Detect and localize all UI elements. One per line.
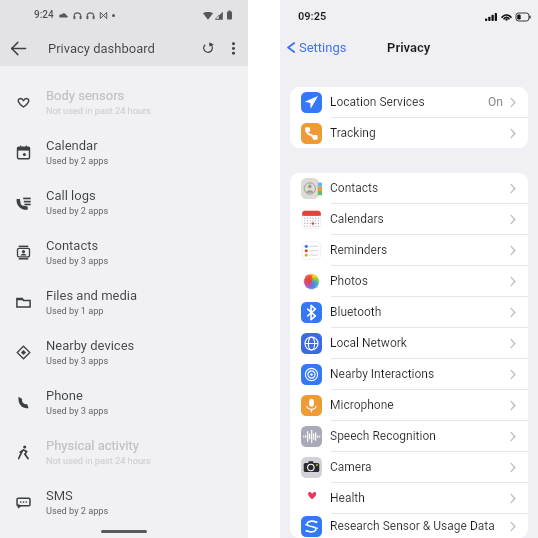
button[interactable]: Local Network <box>290 328 528 358</box>
button[interactable]: Nearby devices <box>0 327 248 377</box>
staticText: Camera <box>330 460 372 474</box>
staticText: Not used in past 24 hours <box>46 105 151 116</box>
staticText: Local Network <box>330 336 407 350</box>
button[interactable]: Photos <box>290 266 528 296</box>
button[interactable]: Refresh <box>194 34 222 62</box>
button[interactable]: Contacts <box>290 173 528 203</box>
button[interactable]: Research Sensor & Usage Data <box>290 514 528 538</box>
staticText: SMS <box>46 488 73 503</box>
button[interactable]: Settings <box>286 40 347 55</box>
staticText: Phone <box>46 388 83 403</box>
staticText: Bluetooth <box>330 305 382 319</box>
staticText: Nearby Interactions <box>330 367 435 381</box>
staticText: Calendar <box>46 138 98 153</box>
button[interactable]: Files and media <box>0 277 248 327</box>
button[interactable]: Back <box>0 30 36 66</box>
staticText: Nearby devices <box>46 338 135 353</box>
button[interactable]: Body sensors <box>0 77 248 127</box>
button[interactable]: Physical activity <box>0 427 248 477</box>
staticText: Physical activity <box>46 438 139 453</box>
staticText: Files and media <box>46 288 137 303</box>
staticText: Contacts <box>330 181 379 195</box>
staticText: Privacy dashboard <box>48 41 155 56</box>
button[interactable]: More options <box>222 37 245 60</box>
staticText: Used by 2 apps <box>46 205 109 216</box>
staticText: Used by 2 apps <box>46 155 109 166</box>
staticText: Health <box>330 491 365 505</box>
staticText: Tracking <box>330 126 376 140</box>
staticText: Privacy <box>387 40 431 55</box>
button[interactable]: Calendar <box>0 127 248 177</box>
staticText: Research Sensor & Usage Data <box>330 519 495 533</box>
button[interactable]: Health <box>290 483 528 513</box>
staticText: Used by 3 apps <box>46 405 109 416</box>
staticText: Used by 1 app <box>46 305 104 316</box>
staticText: Reminders <box>330 243 388 257</box>
staticText: Contacts <box>46 238 99 253</box>
button[interactable]: Contacts <box>0 227 248 277</box>
staticText: Used by 3 apps <box>46 255 109 266</box>
staticText: Settings <box>299 40 347 55</box>
staticText: Used by 2 apps <box>46 505 109 516</box>
staticText: Photos <box>330 274 368 288</box>
staticText: 09:25 <box>298 10 327 23</box>
staticText: Microphone <box>330 398 394 412</box>
staticText: Call logs <box>46 188 96 203</box>
staticText: Speech Recognition <box>330 429 436 443</box>
staticText: Calendars <box>330 212 384 226</box>
button[interactable]: Location Services <box>290 87 528 117</box>
staticText: Body sensors <box>46 88 125 103</box>
button[interactable]: Reminders <box>290 235 528 265</box>
button[interactable]: Calendars <box>290 204 528 234</box>
button[interactable]: Tracking <box>290 118 528 148</box>
button[interactable]: Microphone <box>290 390 528 420</box>
staticText: Not used in past 24 hours <box>46 455 151 466</box>
button[interactable]: Phone <box>0 377 248 427</box>
staticText: On <box>488 95 503 109</box>
button[interactable]: Nearby Interactions <box>290 359 528 389</box>
staticText: Used by 3 apps <box>46 355 109 366</box>
staticText: 9:24 <box>34 9 54 21</box>
button[interactable]: SMS <box>0 477 248 527</box>
button[interactable]: Call logs <box>0 177 248 227</box>
staticText: Location Services <box>330 95 425 109</box>
button[interactable]: Bluetooth <box>290 297 528 327</box>
button[interactable]: Camera <box>290 452 528 482</box>
button[interactable]: Speech Recognition <box>290 421 528 451</box>
